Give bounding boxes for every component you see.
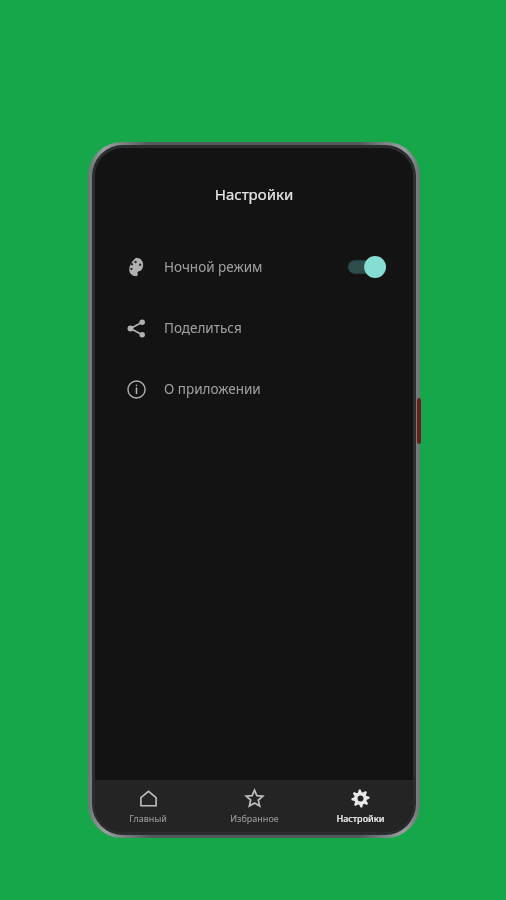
- staticText: Настройки: [336, 812, 385, 824]
- button[interactable]: Ночной режим: [347, 254, 387, 280]
- staticText: Настройки: [95, 184, 413, 204]
- staticText: О приложении: [164, 380, 261, 398]
- staticText: Поделиться: [164, 319, 242, 337]
- staticText: Ночной режим: [164, 258, 263, 276]
- button[interactable]: О приложении: [95, 358, 413, 419]
- button[interactable]: Настройки: [307, 780, 413, 832]
- staticText: Избранное: [230, 812, 279, 824]
- button[interactable]: Поделиться: [95, 297, 413, 358]
- button[interactable]: Главный: [95, 780, 201, 832]
- button[interactable]: Избранное: [201, 780, 307, 832]
- staticText: Главный: [129, 812, 167, 824]
- button[interactable]: Ночной режим: [95, 236, 413, 297]
